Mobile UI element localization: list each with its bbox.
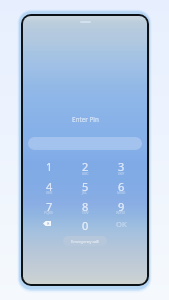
button[interactable]: 9 <box>104 197 138 216</box>
button[interactable]: 1 <box>32 157 66 176</box>
button[interactable]: 2 <box>68 157 102 176</box>
staticText: MNO <box>117 190 126 194</box>
staticText: 6 <box>118 179 125 194</box>
button[interactable]: 4 <box>32 177 66 196</box>
staticText: 2 <box>82 159 89 174</box>
staticText: 8 <box>82 199 89 214</box>
staticText: 5 <box>82 179 89 194</box>
staticText: TUV <box>82 210 89 214</box>
staticText: 0 <box>82 218 89 233</box>
staticText: PQRS <box>44 210 54 214</box>
button[interactable]: 7 <box>32 197 66 216</box>
staticText: 3 <box>118 159 125 174</box>
button[interactable]: 6 <box>104 177 138 196</box>
staticText: Emergency call <box>71 239 99 244</box>
staticText: 1 <box>46 159 53 174</box>
button[interactable]: 5 <box>68 177 102 196</box>
button[interactable]: Emergency call <box>63 236 107 246</box>
staticText: DEF <box>118 171 125 175</box>
staticText: 4 <box>46 179 53 194</box>
button[interactable]: 8 <box>68 197 102 216</box>
button[interactable]: Backspace <box>30 214 64 233</box>
staticText: GHI <box>46 190 53 194</box>
button[interactable]: Pin entry field <box>28 137 142 150</box>
button[interactable]: 0 <box>68 216 102 235</box>
staticText: 7 <box>46 199 53 214</box>
staticText: JKL <box>82 190 88 194</box>
staticText: Enter Pin <box>72 115 99 124</box>
button[interactable]: OK <box>104 214 138 233</box>
staticText: 9 <box>118 199 125 214</box>
staticText: ABC <box>82 171 89 175</box>
staticText: WXYZ <box>116 210 126 214</box>
staticText: OK <box>116 219 127 229</box>
button[interactable]: 3 <box>104 157 138 176</box>
